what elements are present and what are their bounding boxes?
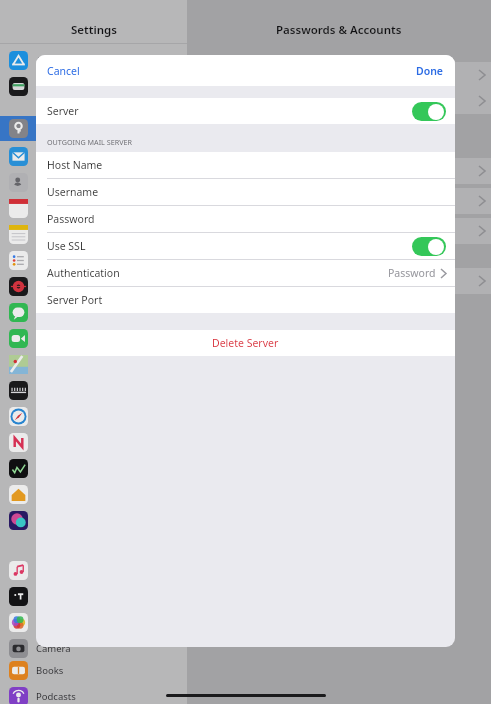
button[interactable]: Home (0, 482, 187, 507)
button[interactable]: Server (36, 98, 455, 124)
button[interactable]: Photos (0, 610, 187, 635)
staticText: Password (47, 212, 95, 226)
staticText: Messages (36, 306, 81, 319)
button[interactable]: Delete Server (36, 330, 455, 356)
staticText: Host Name (47, 158, 103, 172)
button[interactable]: Passwords (0, 116, 187, 141)
button[interactable]: Contacts (0, 170, 187, 195)
button[interactable]: Toggle (412, 102, 446, 121)
button[interactable]: Measure (0, 378, 187, 403)
button[interactable]: Host Name (36, 152, 455, 178)
button[interactable]: App Store (0, 48, 187, 73)
button[interactable]: Camera (0, 636, 187, 661)
button[interactable]: TV (0, 584, 187, 609)
button[interactable]: TV Provider (0, 508, 187, 533)
button[interactable]: Password (36, 206, 455, 232)
staticText: Voice Memos (36, 280, 96, 293)
staticText: Server Port (47, 293, 103, 307)
staticText: Server (47, 104, 79, 118)
button[interactable]: FaceTime (0, 326, 187, 351)
button[interactable]: Safari (0, 404, 187, 429)
button[interactable]: Books (0, 658, 187, 683)
staticText: Password (388, 266, 436, 280)
staticText: Notes (36, 228, 63, 241)
staticText: Use SSL (47, 239, 86, 253)
staticText: Mail (36, 150, 55, 163)
staticText: Done (416, 64, 444, 78)
staticText: Contacts (36, 176, 75, 189)
staticText: Username (47, 185, 99, 199)
staticText: Authentication (47, 266, 120, 280)
button[interactable]: News (0, 430, 187, 455)
button[interactable]: Server Port (36, 287, 455, 313)
staticText: OUTGOING MAIL SERVER (47, 137, 132, 147)
staticText: Cancel (47, 64, 80, 78)
button[interactable]: Stocks (0, 456, 187, 481)
staticText: Settings (71, 22, 117, 38)
staticText: App Store (36, 54, 80, 67)
button[interactable]: Authentication (36, 260, 455, 286)
button[interactable]: Wallet (0, 74, 187, 99)
button[interactable]: Music (0, 558, 187, 583)
button[interactable]: Mail (0, 144, 187, 169)
button[interactable]: Podcasts (0, 684, 187, 704)
button[interactable]: Cancel (36, 58, 91, 84)
button[interactable]: Reminders (0, 248, 187, 273)
staticText: Delete Server (212, 336, 279, 350)
button[interactable]: Done (405, 58, 455, 84)
button[interactable]: Voice Memos (0, 274, 187, 299)
staticText: n (435, 277, 441, 290)
button[interactable]: Notes (0, 222, 187, 247)
staticText: Camera (36, 642, 71, 655)
staticText: Calendar (36, 202, 77, 215)
button[interactable]: Maps (0, 352, 187, 377)
button[interactable]: Username (36, 179, 455, 205)
staticText: Passwords (36, 122, 84, 135)
staticText: Podcasts (36, 690, 76, 703)
staticText: Books (36, 664, 64, 677)
button[interactable]: Use SSL (36, 233, 455, 259)
staticText: Passwords & Accounts (276, 22, 402, 38)
staticText: Reminders (36, 254, 85, 267)
button[interactable]: Messages (0, 300, 187, 325)
staticText: Wallet (36, 80, 64, 93)
button[interactable]: Calendar (0, 196, 187, 221)
button[interactable]: Toggle (412, 237, 446, 256)
